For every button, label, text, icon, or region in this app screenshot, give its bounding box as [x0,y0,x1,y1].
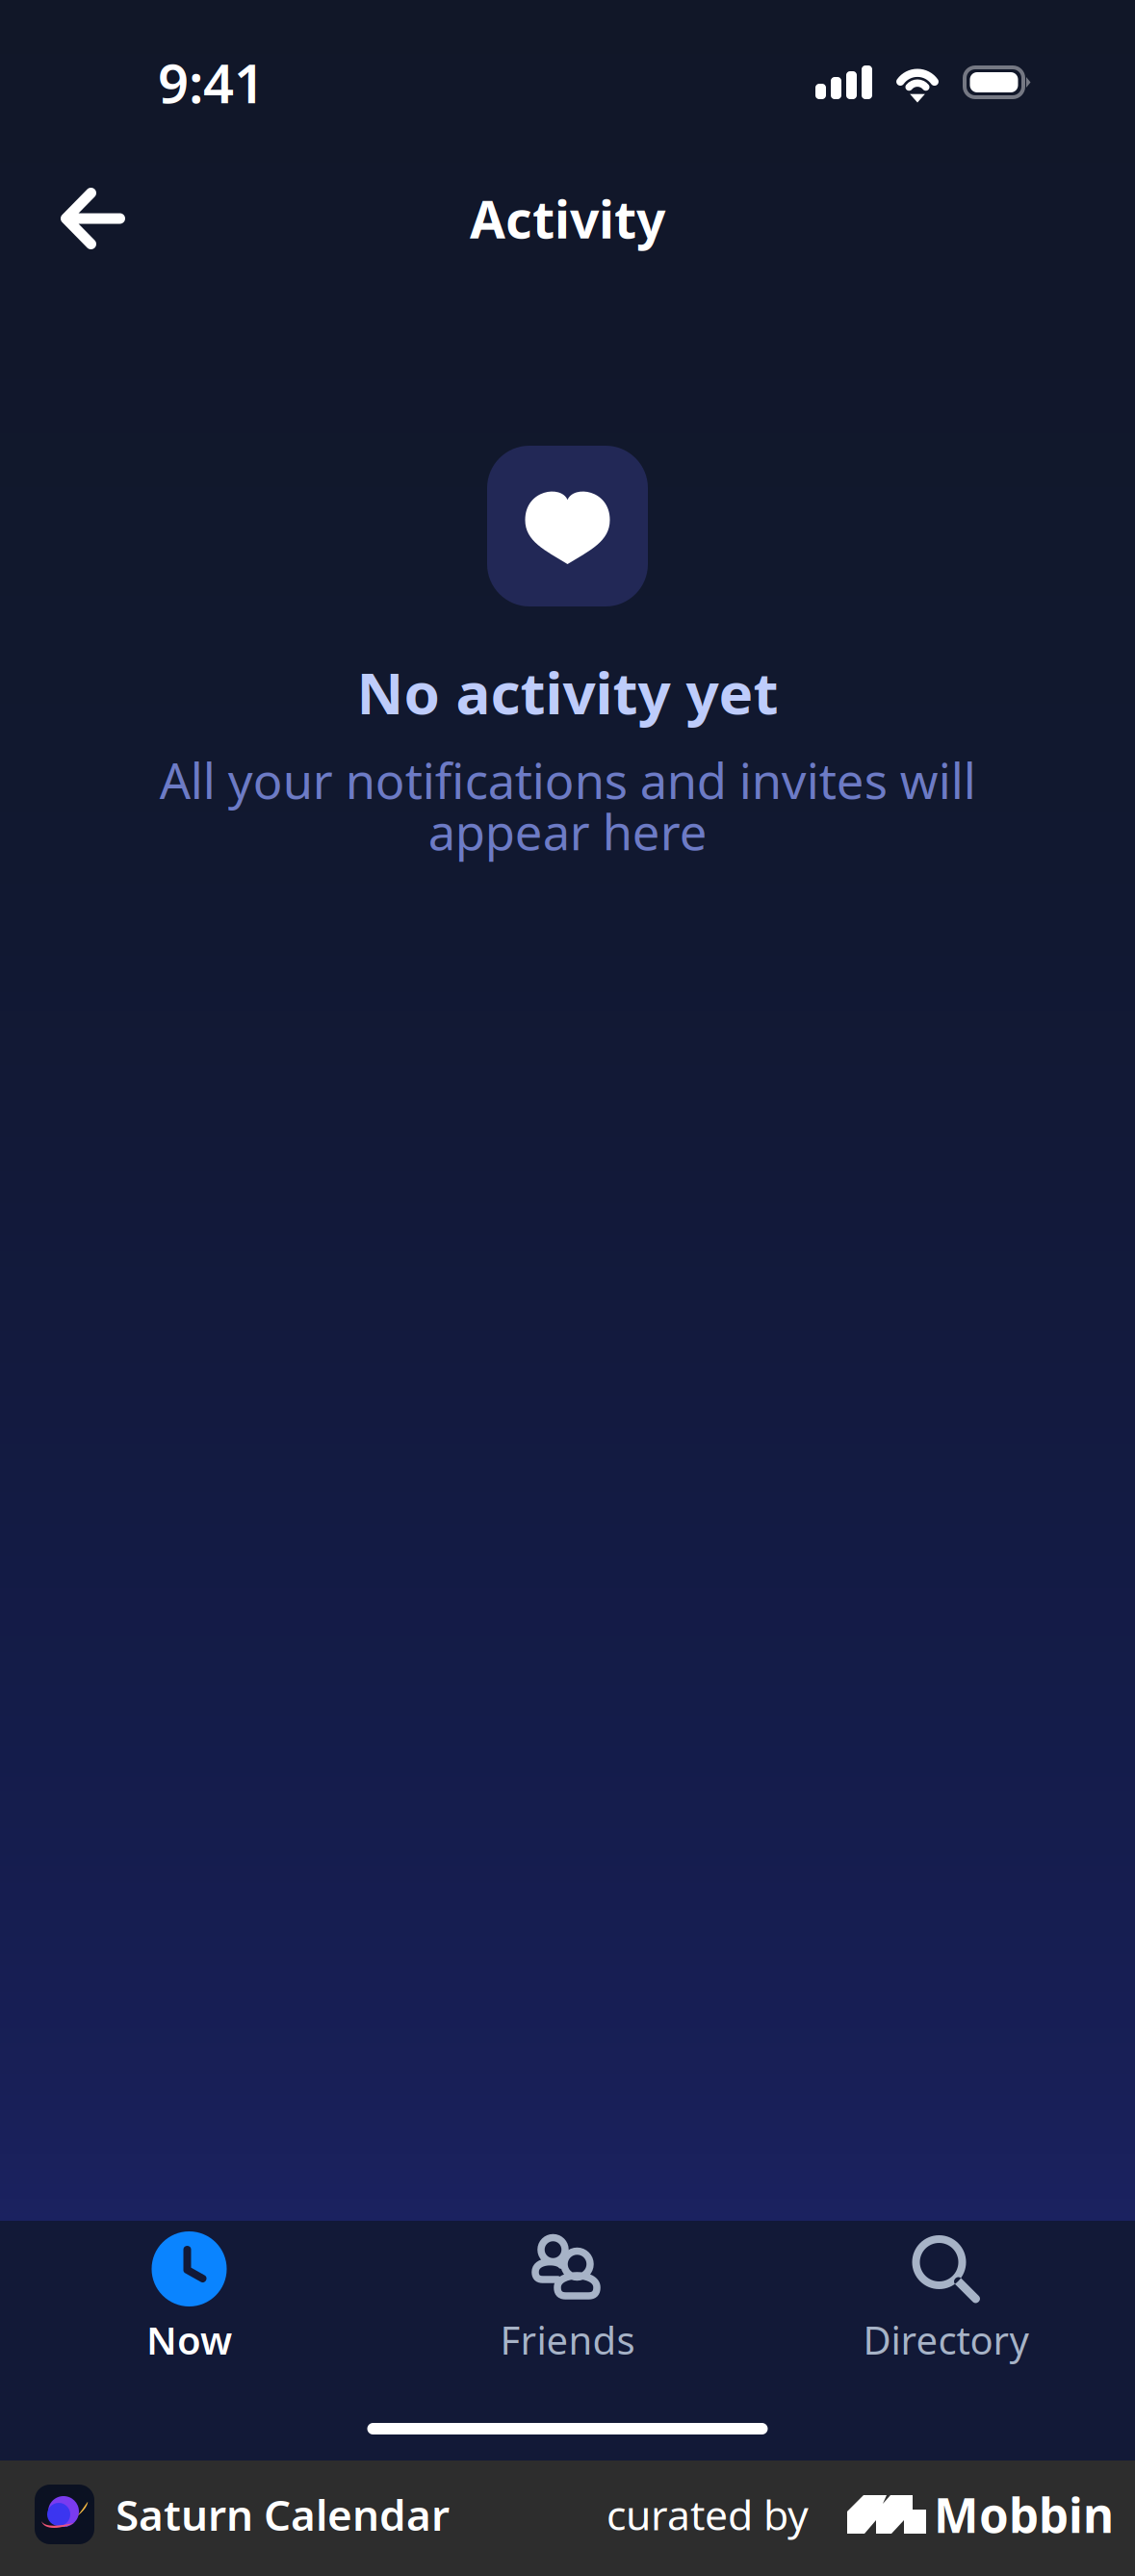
button[interactable]: Now [0,2221,378,2384]
button[interactable]: Back [46,174,140,263]
staticText: Activity [470,184,665,253]
staticText: 9:41 [158,46,265,118]
staticText: Friends [500,2314,635,2365]
staticText: Saturn Calendar [116,2486,450,2543]
staticText: Now [146,2314,232,2365]
staticText: curated by [606,2487,809,2542]
button[interactable]: Friends [378,2221,757,2384]
staticText: Directory [863,2314,1029,2365]
staticText: No activity yet [357,654,778,730]
button[interactable]: Directory [757,2221,1135,2384]
staticText: Mobbin [934,2483,1114,2546]
staticText: All your notifications and invites will … [159,748,976,864]
